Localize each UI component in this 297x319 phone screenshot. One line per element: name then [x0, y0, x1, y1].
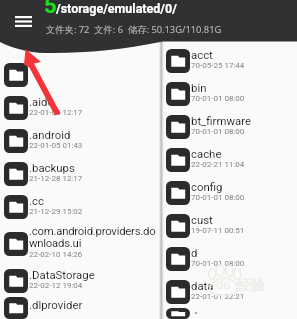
staticText: .DataStorage — [29, 268, 95, 281]
button[interactable]: .android — [0, 124, 159, 157]
staticText: 22-01-05 01:43 — [29, 141, 83, 150]
button[interactable]: .cc — [0, 190, 159, 223]
button[interactable]: Menu — [6, 6, 40, 36]
staticText: 22-01-05 12:17 — [29, 108, 83, 117]
button[interactable]: .aide — [0, 91, 159, 124]
staticText: 5 — [44, 0, 57, 19]
staticText: .backups — [29, 161, 75, 174]
staticText: bin — [191, 81, 207, 94]
button[interactable]: .backups — [0, 157, 159, 190]
staticText: 22-02-12 19:04 — [29, 281, 83, 290]
button[interactable] — [0, 58, 159, 91]
staticText: bt_firmware — [191, 114, 251, 127]
button[interactable]: cache — [164, 143, 297, 176]
staticText: cache — [191, 147, 222, 160]
button[interactable]: bin — [164, 77, 297, 110]
button[interactable]: d — [164, 242, 297, 275]
staticText: .cc — [29, 194, 44, 207]
staticText: 22-01-01 22:21 — [191, 292, 245, 301]
button[interactable]: acct — [164, 44, 297, 77]
button[interactable]: config — [164, 176, 297, 209]
staticText: /storage/emulated/0/ — [56, 1, 177, 16]
staticText: 70-01-01 08:00 — [191, 94, 245, 103]
staticText: config — [191, 180, 223, 193]
button[interactable]: data — [164, 275, 297, 308]
staticText: 70-05-25 17:44 — [191, 61, 245, 70]
button[interactable]: .DataStorage — [0, 264, 159, 297]
staticText: 19-07-11 00:51 — [191, 226, 245, 235]
button[interactable]: cust — [164, 209, 297, 242]
button[interactable]: .dlprovider — [0, 297, 159, 319]
other: Annotation arrow — [0, 0, 297, 319]
staticText: dev — [191, 309, 209, 314]
staticText: 22-02-10 14:26 — [29, 250, 83, 259]
staticText: acct — [191, 48, 213, 61]
staticText: 70-01-01 08:00 — [191, 127, 245, 136]
staticText: .android — [29, 128, 71, 141]
button[interactable]: dev — [164, 308, 297, 319]
staticText: .com.android.providers.do wnloads.ui — [29, 224, 156, 250]
staticText: data — [191, 279, 214, 292]
staticText: .aide — [29, 95, 54, 108]
staticText: 70-01-01 08:00 — [191, 193, 245, 202]
button[interactable]: bt_firmware — [164, 110, 297, 143]
staticText: cust — [191, 213, 213, 226]
staticText: 21-12-29 15:02 — [29, 207, 83, 216]
staticText: .dlprovider — [29, 298, 83, 311]
staticText: d — [191, 246, 198, 259]
staticText: 22-02-21 11:04 — [191, 160, 245, 169]
staticText: 70-01-01 08:00 — [191, 259, 245, 268]
staticText: 经验 — [236, 276, 265, 294]
staticText: du — [216, 277, 231, 292]
button[interactable]: .com.android.providers.do wnloads.ui — [0, 223, 159, 264]
staticText: 21-12-28 12:17 — [29, 174, 83, 183]
staticText: 文件夹: 72 文件: 6 储存: 50.13G/110.81G — [46, 23, 222, 36]
